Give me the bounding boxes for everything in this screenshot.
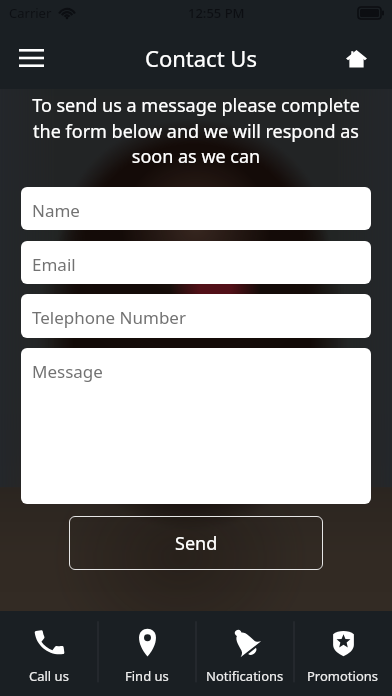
button[interactable]: Call us [0, 611, 98, 696]
staticText: Message [32, 360, 103, 383]
button[interactable]: Find us [98, 611, 196, 696]
staticText: Send [175, 531, 218, 556]
button[interactable]: Telephone Number [21, 294, 371, 338]
staticText: To send us a message please complete the… [28, 93, 364, 168]
staticText: Name [32, 199, 80, 222]
staticText: Telephone Number [32, 306, 186, 329]
button[interactable]: Promotions [294, 611, 392, 696]
staticText: Contact Us [145, 43, 257, 73]
button[interactable]: Name [21, 187, 371, 230]
staticText: 12:55 PM [188, 4, 245, 22]
button[interactable]: Message [21, 348, 371, 504]
button[interactable]: Send [69, 516, 323, 570]
staticText: Carrier [9, 4, 52, 22]
staticText: Promotions [307, 667, 379, 685]
staticText: Call us [29, 667, 69, 685]
button[interactable]: Notifications [196, 611, 294, 696]
button[interactable]: Menu [9, 36, 53, 80]
button[interactable]: Home [334, 36, 378, 80]
staticText: Find us [125, 667, 169, 685]
staticText: Notifications [206, 667, 284, 685]
button[interactable]: Email [21, 241, 371, 284]
staticText: Email [32, 253, 76, 276]
